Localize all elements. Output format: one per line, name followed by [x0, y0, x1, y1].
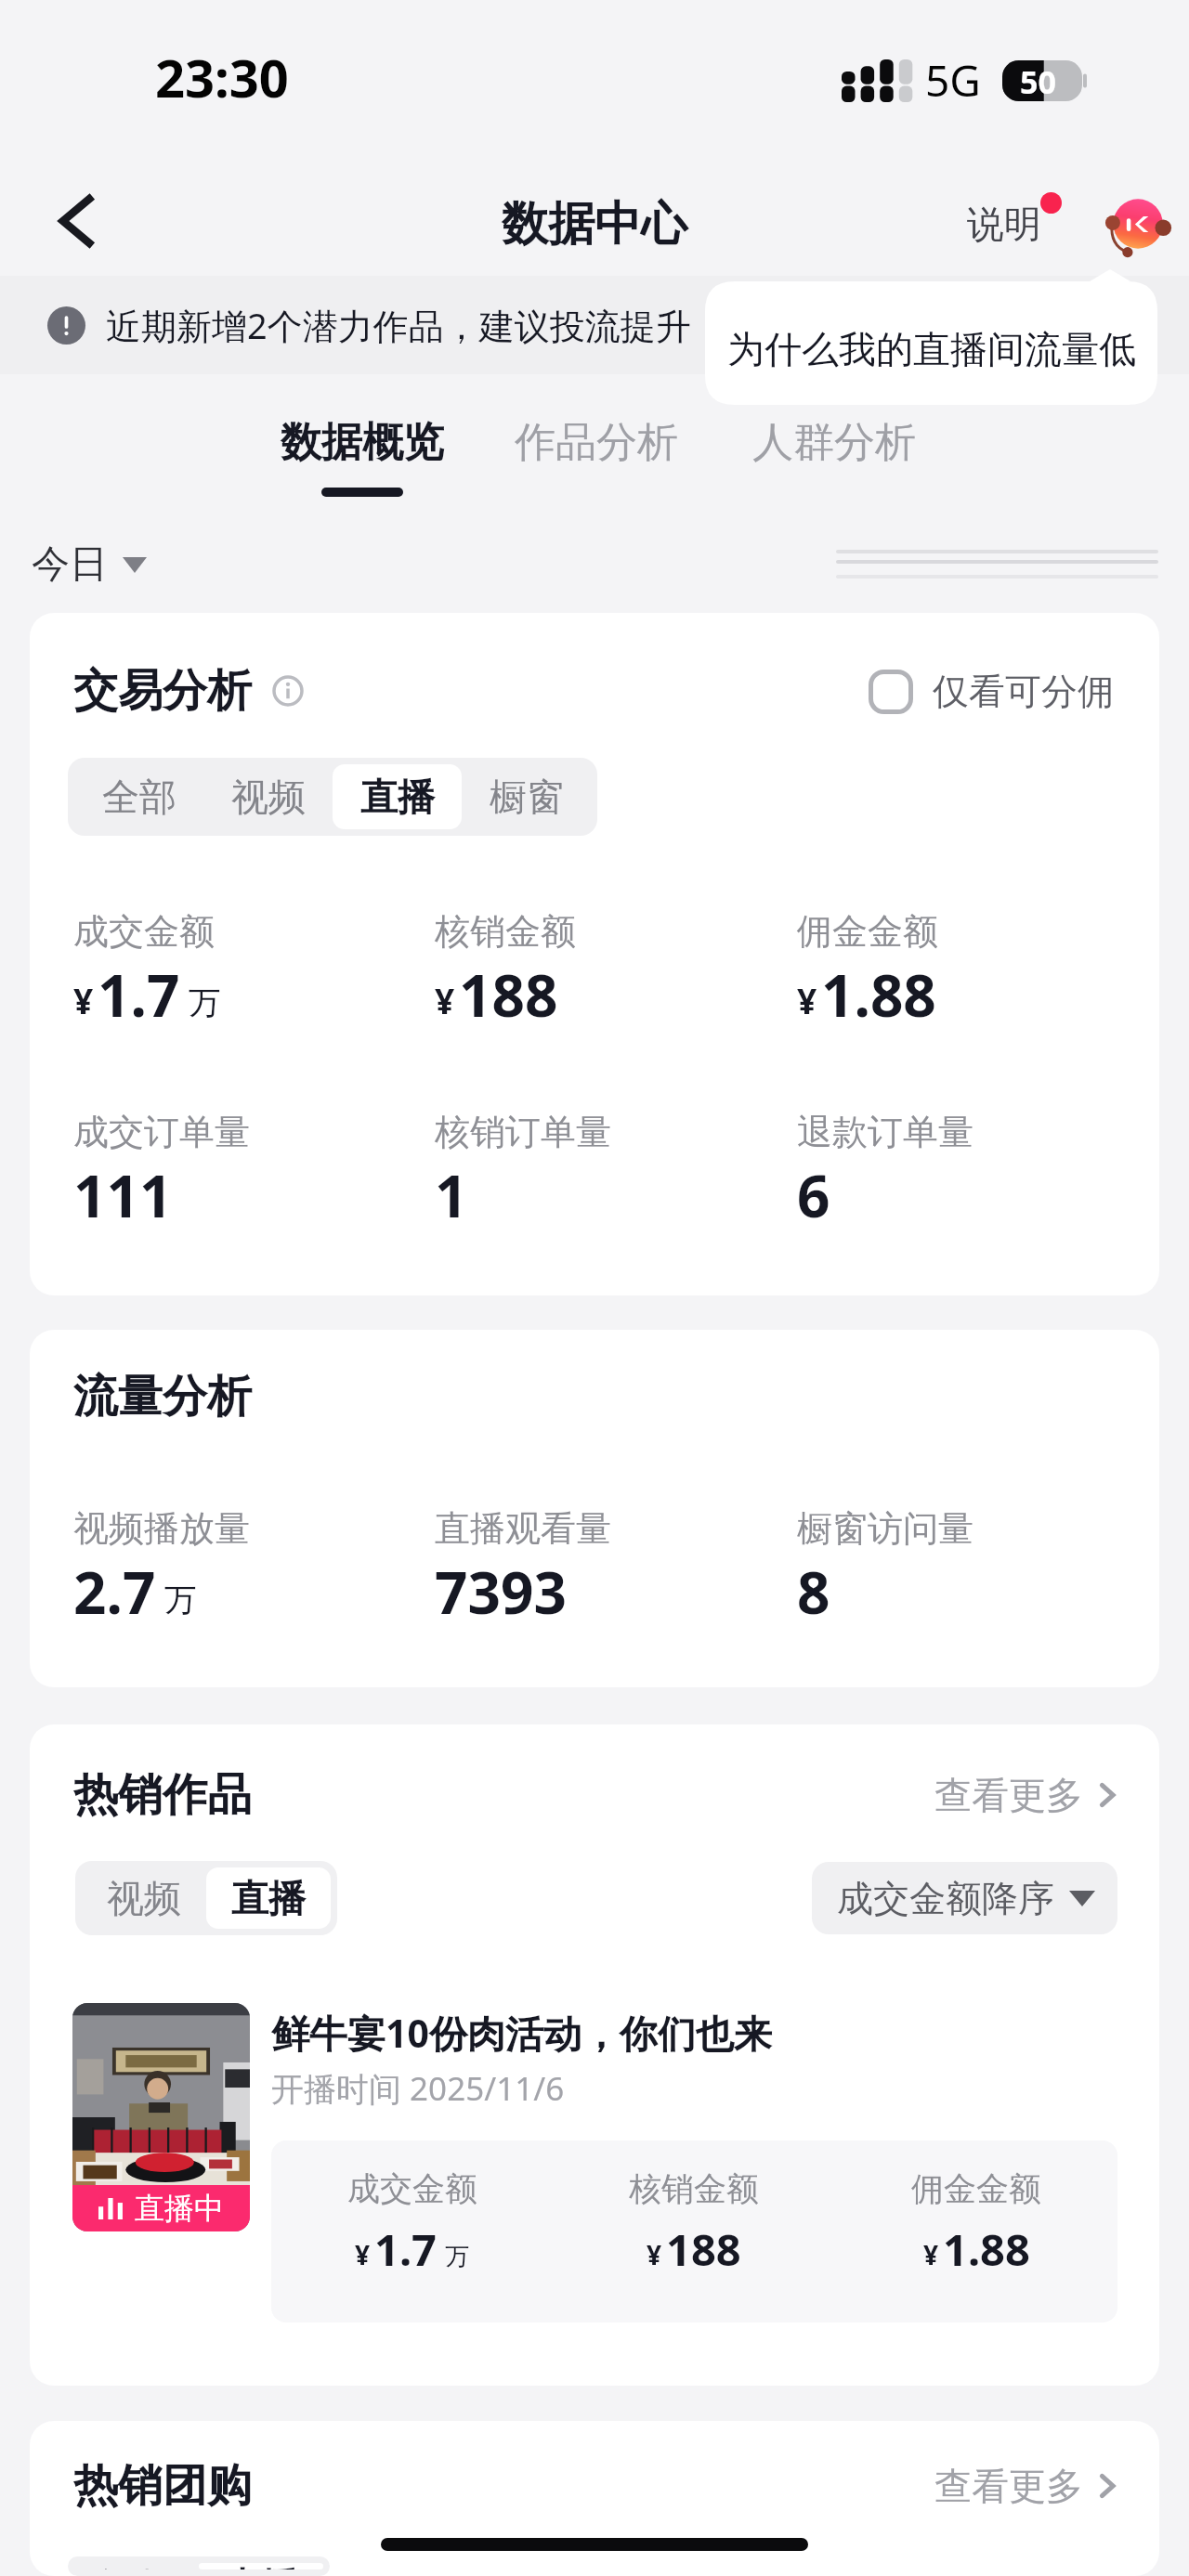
staticText: 188 — [666, 2219, 741, 2279]
staticText: 橱窗访问量 — [797, 1506, 973, 1551]
staticText: 全部 — [102, 774, 176, 820]
staticText: 111 — [73, 1156, 173, 1234]
staticText: ¥ — [355, 2237, 371, 2272]
staticText: 开播时间 2025/11/6 — [271, 2066, 565, 2111]
staticText: 1.7 — [374, 2219, 437, 2279]
staticText: 查看更多 — [934, 2463, 1083, 2509]
staticText: 成交金额 — [73, 909, 215, 954]
button[interactable]: 近期新增2个潜力作品，建议投流提升 — [0, 276, 1189, 374]
staticText: 查看更多 — [934, 1772, 1083, 1818]
staticText: 流量分析 — [73, 1369, 252, 1425]
button[interactable]: 仅看可分佣 — [869, 669, 1114, 714]
button[interactable]: 成交金额降序 — [812, 1862, 1117, 1934]
button[interactable]: 直播 — [206, 1867, 331, 1929]
staticText: 鲜牛宴10份肉活动，你们也来 — [271, 2007, 772, 2059]
button[interactable]: 今日 — [32, 540, 147, 589]
staticText: ¥ — [797, 977, 817, 1024]
staticText: 说明 — [967, 201, 1041, 247]
staticText: 作品分析 — [515, 417, 678, 468]
staticText: 数据概览 — [281, 417, 444, 468]
staticText: 核销金额 — [629, 2168, 759, 2209]
staticText: 佣金金额 — [911, 2168, 1041, 2209]
button[interactable]: 人群分析 — [752, 417, 916, 468]
button[interactable]: 直播 — [333, 764, 462, 829]
button[interactable]: 说明 — [961, 195, 1047, 253]
staticText: 核销订单量 — [435, 1110, 611, 1154]
button[interactable]: 查看更多 — [934, 1772, 1120, 1818]
staticText: 视频 — [107, 1875, 181, 1921]
staticText: 人群分析 — [752, 417, 916, 468]
button[interactable]: Back — [35, 179, 119, 263]
staticText: 万 — [445, 2242, 470, 2272]
staticText: ¥ — [73, 977, 94, 1024]
staticText: 5G — [925, 51, 981, 110]
staticText: 近期新增2个潜力作品，建议投流提升 — [106, 301, 691, 349]
staticText: 仅看可分佣 — [933, 669, 1114, 714]
staticText: 万 — [189, 983, 221, 1024]
button[interactable]: 视频 — [203, 764, 333, 829]
staticText: 1.7 — [98, 956, 180, 1034]
staticText: 2.7 — [73, 1553, 156, 1631]
staticText: ¥ — [923, 2237, 939, 2272]
button[interactable]: 橱窗 — [462, 764, 591, 829]
staticText: 1.88 — [943, 2219, 1030, 2279]
staticText: 佣金金额 — [797, 909, 938, 954]
staticText: 橱窗 — [490, 774, 564, 820]
button[interactable]: 直播 — [199, 2563, 323, 2569]
staticText: 热销作品 — [73, 1767, 252, 1823]
button[interactable]: 为什么我的直播间流量低 — [705, 269, 1157, 405]
staticText: 直播中 — [135, 2190, 224, 2227]
staticText: 为什么我的直播间流量低 — [727, 326, 1136, 372]
staticText: 直播 — [224, 2563, 298, 2569]
staticText: 万 — [164, 1581, 197, 1621]
staticText: 直播观看量 — [435, 1506, 611, 1551]
staticText: 1.88 — [821, 956, 936, 1034]
button[interactable]: 数据概览 — [281, 417, 444, 497]
staticText: 核销金额 — [435, 909, 576, 954]
staticText: 交易分析 — [73, 663, 252, 719]
staticText: ¥ — [647, 2237, 662, 2272]
staticText: 退款订单量 — [797, 1110, 973, 1154]
staticText: 视频 — [231, 774, 306, 820]
staticText: 23:30 — [155, 42, 289, 112]
staticText: 视频播放量 — [73, 1506, 250, 1551]
staticText: 数据中心 — [502, 195, 687, 254]
staticText: 6 — [797, 1156, 830, 1234]
staticText: 1 — [435, 1156, 468, 1234]
staticText: 8 — [797, 1553, 830, 1631]
staticText: 188 — [459, 956, 558, 1034]
staticText: ¥ — [435, 977, 455, 1024]
staticText: 直播 — [231, 1875, 306, 1921]
staticText: 成交订单量 — [73, 1110, 250, 1154]
button[interactable]: 作品分析 — [515, 417, 678, 468]
button[interactable]: Customer service — [1096, 186, 1172, 262]
staticText: 热销团购 — [73, 2458, 252, 2514]
staticText: 今日 — [32, 540, 108, 589]
button[interactable]: 视频 — [82, 1867, 206, 1929]
staticText: 成交金额降序 — [837, 1876, 1054, 1921]
button[interactable]: 全部 — [74, 764, 203, 829]
staticText: 直播 — [360, 774, 435, 820]
staticText: 成交金额 — [347, 2168, 477, 2209]
button[interactable]: Live room thumbnail — [72, 2003, 250, 2231]
staticText: 7393 — [435, 1553, 567, 1631]
staticText: 50 — [1020, 60, 1056, 101]
button[interactable]: 查看更多 — [934, 2463, 1120, 2509]
